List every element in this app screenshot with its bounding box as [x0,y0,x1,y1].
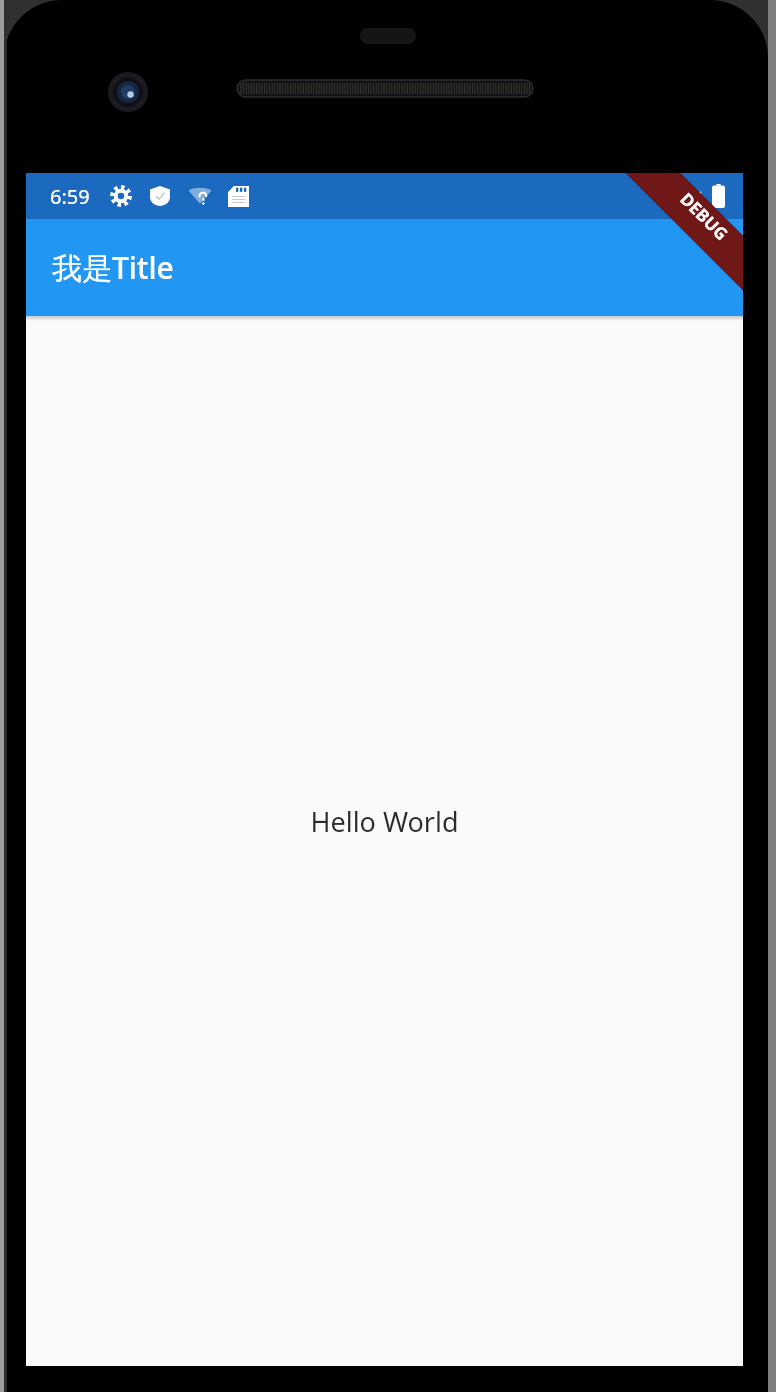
staticText: 6:59 [50,183,90,210]
button[interactable]: 我是Title [26,219,743,316]
staticText: DEBUG [675,187,733,245]
staticText: 我是Title [52,247,174,288]
staticText: Hello World [310,803,459,840]
